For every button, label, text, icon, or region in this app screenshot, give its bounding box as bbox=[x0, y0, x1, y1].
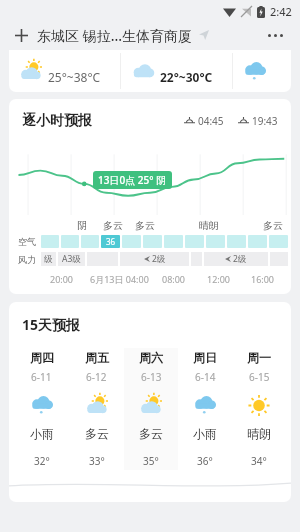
staticText: 东城区 锡拉...生体育商厦 bbox=[37, 26, 193, 45]
staticText: 16:00 bbox=[251, 273, 275, 285]
staticText: 周五 bbox=[85, 350, 109, 365]
staticText: 风力 bbox=[18, 254, 36, 265]
button[interactable]: 周六 bbox=[124, 348, 178, 470]
staticText: 12:00 bbox=[207, 273, 231, 285]
staticText: 25°~38°C bbox=[48, 69, 101, 85]
staticText: 周四 bbox=[30, 350, 54, 365]
staticText: 逐小时预报 bbox=[22, 112, 92, 130]
staticText: 2级 bbox=[233, 253, 247, 265]
staticText: 04:45 bbox=[198, 114, 224, 128]
staticText: 6-13 bbox=[141, 370, 162, 384]
staticText: 19:43 bbox=[252, 114, 278, 128]
staticText: 空气 bbox=[18, 236, 36, 247]
staticText: 多云 bbox=[85, 426, 109, 441]
staticText: 多云 bbox=[103, 219, 123, 232]
staticText: 级 bbox=[44, 254, 53, 265]
staticText: 6-11 bbox=[31, 370, 52, 384]
staticText: 2级 bbox=[152, 253, 166, 265]
staticText: 20:00 bbox=[50, 273, 74, 285]
staticText: 13日0点 25° 阴 bbox=[98, 173, 167, 187]
button[interactable]: Add city bbox=[12, 26, 30, 44]
staticText: 6-12 bbox=[86, 370, 107, 384]
button[interactable]: 25°~38°C bbox=[9, 50, 291, 92]
button[interactable]: 周一 bbox=[232, 348, 286, 470]
staticText: 多云 bbox=[139, 426, 163, 441]
button[interactable]: 周日 bbox=[178, 348, 232, 470]
staticText: 晴朗 bbox=[199, 219, 219, 232]
staticText: 6月13日 04:00 bbox=[90, 273, 149, 285]
button[interactable]: 周五 bbox=[69, 348, 124, 470]
staticText: 22°~30°C bbox=[160, 69, 213, 85]
button[interactable]: 逐小时预报 bbox=[9, 99, 291, 294]
staticText: 6-14 bbox=[195, 370, 216, 384]
staticText: 08:00 bbox=[162, 273, 186, 285]
staticText: 多云 bbox=[263, 219, 283, 232]
staticText: 34° bbox=[251, 454, 267, 468]
staticText: 阴 bbox=[77, 219, 87, 232]
button[interactable]: 15天预报 bbox=[9, 302, 291, 502]
staticText: 6-15 bbox=[249, 370, 270, 384]
staticText: 36° bbox=[197, 454, 213, 468]
staticText: 2:42 bbox=[270, 4, 292, 19]
button[interactable]: More options bbox=[262, 22, 288, 48]
staticText: 周六 bbox=[139, 350, 163, 365]
staticText: 36 bbox=[106, 236, 116, 247]
staticText: 小雨 bbox=[193, 426, 217, 441]
staticText: 32° bbox=[34, 454, 50, 468]
staticText: 周日 bbox=[193, 350, 217, 365]
staticText: 多云 bbox=[135, 219, 155, 232]
button[interactable]: 周四 bbox=[14, 348, 69, 470]
staticText: 周一 bbox=[247, 350, 271, 365]
staticText: 小雨 bbox=[30, 426, 54, 441]
staticText: 15天预报 bbox=[22, 315, 81, 334]
staticText: 35° bbox=[143, 454, 159, 468]
staticText: A3级 bbox=[62, 253, 81, 265]
staticText: 晴朗 bbox=[247, 426, 271, 441]
staticText: 33° bbox=[89, 454, 105, 468]
